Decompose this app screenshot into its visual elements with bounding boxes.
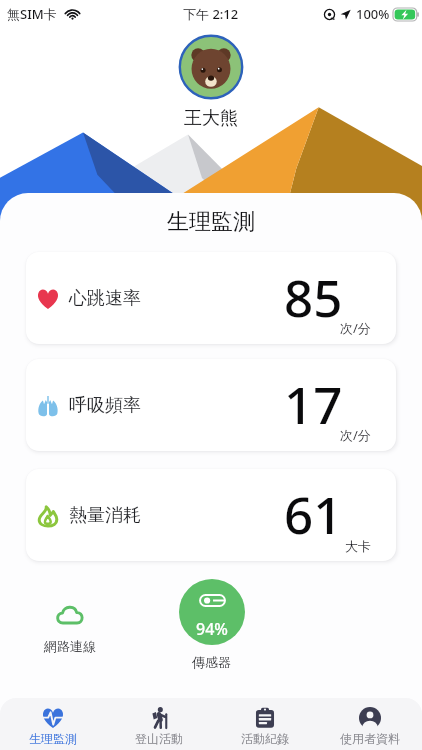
staticText: 使用者資料 bbox=[340, 731, 400, 746]
staticText: 生理監測 bbox=[29, 731, 77, 746]
staticText: 生理監測 bbox=[0, 208, 422, 236]
staticText: 次/分 bbox=[340, 426, 371, 444]
button[interactable]: 生理監測 bbox=[0, 698, 106, 750]
button[interactable]: 94% bbox=[168, 579, 255, 670]
button[interactable]: 使用者資料 bbox=[318, 698, 422, 750]
staticText: 大卡 bbox=[345, 538, 371, 554]
staticText: 登山活動 bbox=[135, 731, 183, 746]
staticText: 呼吸頻率 bbox=[69, 394, 141, 417]
button[interactable]: 熱量消耗 bbox=[26, 469, 396, 561]
staticText: 85 bbox=[284, 262, 343, 331]
button[interactable]: 網路連線 bbox=[29, 604, 110, 654]
staticText: 無SIM卡 bbox=[7, 5, 57, 23]
staticText: 王大熊 bbox=[184, 107, 238, 130]
staticText: 61 bbox=[284, 479, 343, 548]
staticText: 心跳速率 bbox=[69, 287, 141, 310]
staticText: 次/分 bbox=[340, 319, 371, 337]
staticText: 活動紀錄 bbox=[241, 731, 289, 746]
button[interactable]: 心跳速率 bbox=[26, 252, 396, 344]
staticText: 94% bbox=[196, 618, 228, 640]
button[interactable]: 登山活動 bbox=[106, 698, 212, 750]
staticText: 下午 2:12 bbox=[183, 5, 239, 23]
staticText: 100% bbox=[356, 5, 390, 23]
staticText: 熱量消耗 bbox=[69, 504, 141, 527]
button[interactable]: 活動紀錄 bbox=[212, 698, 318, 750]
staticText: 傳感器 bbox=[192, 654, 231, 670]
button[interactable]: 呼吸頻率 bbox=[26, 359, 396, 451]
staticText: 17 bbox=[284, 369, 343, 438]
staticText: 網路連線 bbox=[44, 638, 96, 654]
